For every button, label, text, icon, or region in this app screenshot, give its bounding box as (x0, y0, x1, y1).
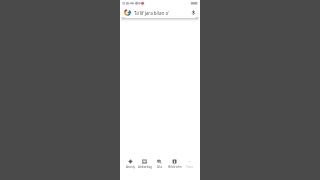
button[interactable]: Izla (152, 159, 167, 170)
staticText: Yana (186, 165, 193, 169)
staticText: Ta'lif jara bilan o' (134, 10, 170, 16)
staticText: Anbardag (138, 165, 152, 169)
staticText: Izla (157, 165, 162, 169)
staticText: Asosiy (126, 165, 135, 169)
button[interactable]: Bildirishn (167, 159, 182, 170)
button[interactable]: Anbardag (137, 159, 152, 170)
button[interactable]: Yana (182, 159, 197, 170)
button[interactable]: Voice search (191, 10, 196, 15)
button[interactable]: Ta'lif jara bilan o' (122, 7, 198, 18)
staticText: Bildirishn (168, 165, 182, 169)
button[interactable]: Asosiy (123, 159, 137, 170)
